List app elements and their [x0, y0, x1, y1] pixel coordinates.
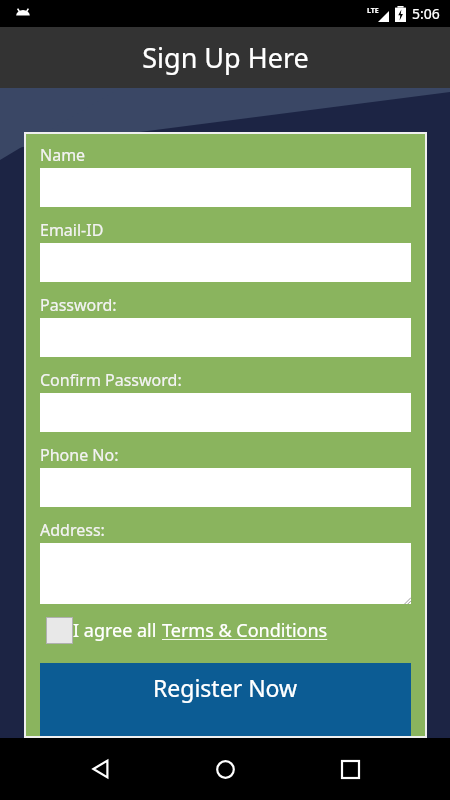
other: I agree checkbox — [46, 617, 73, 644]
staticText: Password: — [40, 294, 117, 316]
staticText: LTE — [367, 6, 379, 16]
button[interactable]: I agree checkbox — [46, 617, 328, 644]
staticText: 5:06 — [412, 4, 440, 23]
staticText: Register Now — [153, 672, 298, 703]
staticText: Phone No: — [40, 444, 119, 466]
staticText: Name — [40, 144, 86, 166]
staticText: I agree all — [73, 618, 162, 643]
button[interactable]: Back — [77, 745, 125, 793]
staticText: Confirm Password: — [40, 369, 182, 391]
staticText: Address: — [40, 519, 105, 541]
staticText: Terms & Conditions — [162, 618, 328, 643]
staticText: Email-ID — [40, 219, 104, 241]
staticText: Sign Up Here — [142, 39, 309, 76]
button[interactable]: Register Now — [40, 663, 411, 738]
button[interactable]: Recents — [326, 745, 374, 793]
button[interactable]: Home — [201, 745, 249, 793]
